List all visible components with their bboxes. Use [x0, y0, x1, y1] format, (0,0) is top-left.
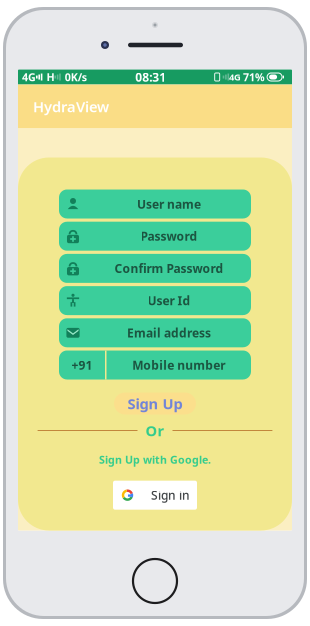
button[interactable]: User Id [59, 286, 251, 315]
staticText: User name [137, 196, 201, 212]
staticText: 0K/s [65, 70, 87, 84]
staticText: Sign Up with Google. [99, 452, 211, 467]
staticText: 4G [22, 70, 36, 84]
staticText: 08:31 [135, 69, 166, 85]
staticText: H [46, 70, 54, 84]
staticText: Sign Up [127, 394, 182, 413]
staticText: Mobile number [132, 357, 225, 373]
staticText: Confirm Password [114, 260, 223, 276]
button[interactable]: +91 [59, 350, 251, 379]
staticText: HydraView [33, 97, 109, 116]
staticText: Or [145, 421, 164, 440]
button[interactable]: User name [59, 189, 251, 218]
staticText: Password [140, 228, 197, 244]
staticText: Email address [127, 325, 211, 341]
button[interactable]: Password [59, 222, 251, 251]
button[interactable]: Confirm Password [59, 254, 251, 283]
button[interactable]: Sign Up [114, 392, 196, 414]
staticText: 4G [229, 71, 241, 83]
staticText: User Id [147, 293, 190, 308]
staticText: +91 [71, 357, 92, 373]
button[interactable]: Sign in [113, 481, 197, 510]
staticText: 71% [243, 70, 265, 84]
button[interactable]: Email address [59, 318, 251, 347]
staticText: Sign in [151, 487, 190, 503]
